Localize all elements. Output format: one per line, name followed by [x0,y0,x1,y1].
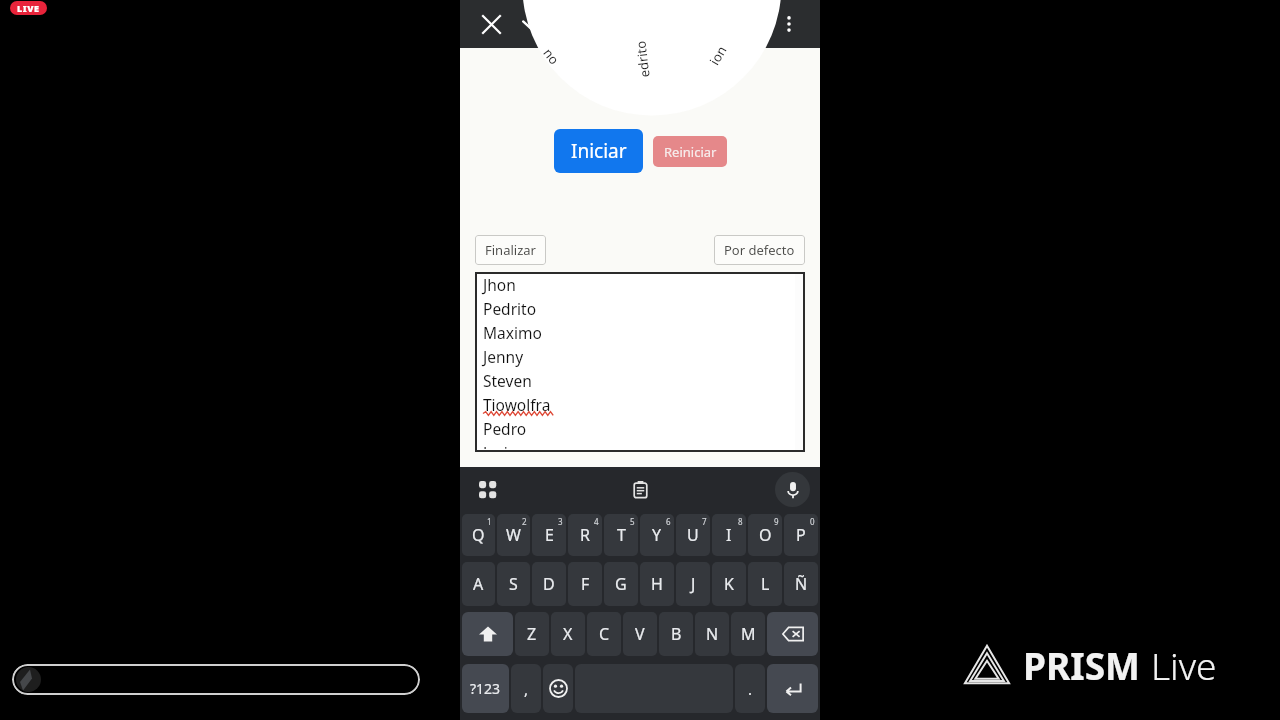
button[interactable]: Enter [767,664,818,713]
button[interactable]: O [748,514,782,556]
button[interactable]: Clipboard [624,473,656,505]
staticText: L [761,573,770,595]
staticText: PRISM [1023,640,1140,690]
staticText: Jenny [483,346,524,367]
staticText: E [545,524,554,546]
staticText: Pedro [483,418,527,439]
staticText: Pedrito [483,298,537,319]
staticText: T [617,524,626,546]
staticText: Javi [483,442,508,449]
staticText: Steven [483,370,532,391]
button[interactable]: Por defecto [714,235,805,265]
staticText: Y [652,524,662,546]
button[interactable]: H [640,562,674,606]
button[interactable]: R [568,514,602,556]
button[interactable]: Reiniciar [653,136,727,167]
staticText: edrito [631,39,654,78]
button[interactable]: E [532,514,566,556]
staticText: Live [1151,640,1217,690]
button[interactable]: ?123 [462,664,509,713]
button[interactable]: Keyboard options [471,473,503,505]
staticText: . [748,679,753,699]
button[interactable]: Backspace [767,612,818,656]
button[interactable]: LIVE [17,2,40,14]
staticText: Tiowolfra [483,394,551,415]
button[interactable]: S [497,562,530,606]
button[interactable]: Chat input [12,664,420,695]
button[interactable]: V [623,612,657,656]
staticText: F [581,573,590,595]
button[interactable]: I [712,514,746,556]
staticText: C [599,623,610,645]
staticText: U [687,524,699,546]
staticText: 1 [487,516,492,527]
button[interactable]: Q [462,514,495,556]
button[interactable]: C [587,612,621,656]
staticText: 8 [738,516,743,527]
button[interactable]: U [676,514,710,556]
button[interactable]: M [731,612,765,656]
staticText: M [741,623,756,645]
button[interactable]: L [748,562,782,606]
staticText: X [563,623,573,645]
button[interactable]: Voice input [775,472,810,507]
button[interactable]: . [735,664,765,713]
button[interactable]: Y [640,514,674,556]
staticText: Reiniciar [664,143,717,161]
staticText: G [615,573,627,595]
button[interactable]: More options [769,4,809,44]
staticText: N [706,623,719,645]
staticText: Z [527,623,537,645]
button[interactable]: , [511,664,541,713]
button[interactable]: P [784,514,818,556]
button[interactable]: Iniciar [554,129,643,173]
button[interactable]: W [497,514,530,556]
button[interactable]: N [695,612,729,656]
staticText: R [580,524,590,546]
button[interactable]: J [676,562,710,606]
button[interactable]: Emoji [543,664,573,713]
button[interactable]: K [712,562,746,606]
staticText: I [726,524,732,546]
staticText: D [543,573,555,595]
button[interactable]: Jhon [475,272,805,452]
button[interactable]: Minimize [510,3,552,45]
staticText: B [671,623,682,645]
button[interactable]: G [604,562,638,606]
staticText: Maximo [483,322,542,343]
staticText: 6 [666,516,671,527]
staticText: W [506,524,521,546]
staticText: 4 [594,516,599,527]
staticText: V [635,623,645,645]
button[interactable]: Ñ [784,562,818,606]
button[interactable]: T [604,514,638,556]
button[interactable]: D [532,562,566,606]
button[interactable]: A [462,562,495,606]
staticText: Q [472,524,485,546]
button[interactable]: Finalizar [475,235,546,265]
staticText: ion [705,42,731,68]
staticText: P [796,524,806,546]
button[interactable]: Shift [462,612,513,656]
button[interactable]: X [551,612,585,656]
staticText: Jhon [483,274,516,295]
staticText: 2 [522,516,527,527]
staticText: 3 [558,516,563,527]
staticText: Por defecto [724,241,795,259]
staticText: Iniciar [571,138,627,164]
button[interactable]: Close [470,3,512,45]
staticText: H [651,573,663,595]
button[interactable]: Z [515,612,549,656]
staticText: Ñ [795,573,808,595]
staticText: , [524,679,529,699]
staticText: K [724,573,734,595]
button[interactable]: B [659,612,693,656]
button[interactable]: F [568,562,602,606]
button[interactable]: Bookmark [733,4,773,44]
staticText: S [509,573,518,595]
staticText: ou [537,46,561,70]
